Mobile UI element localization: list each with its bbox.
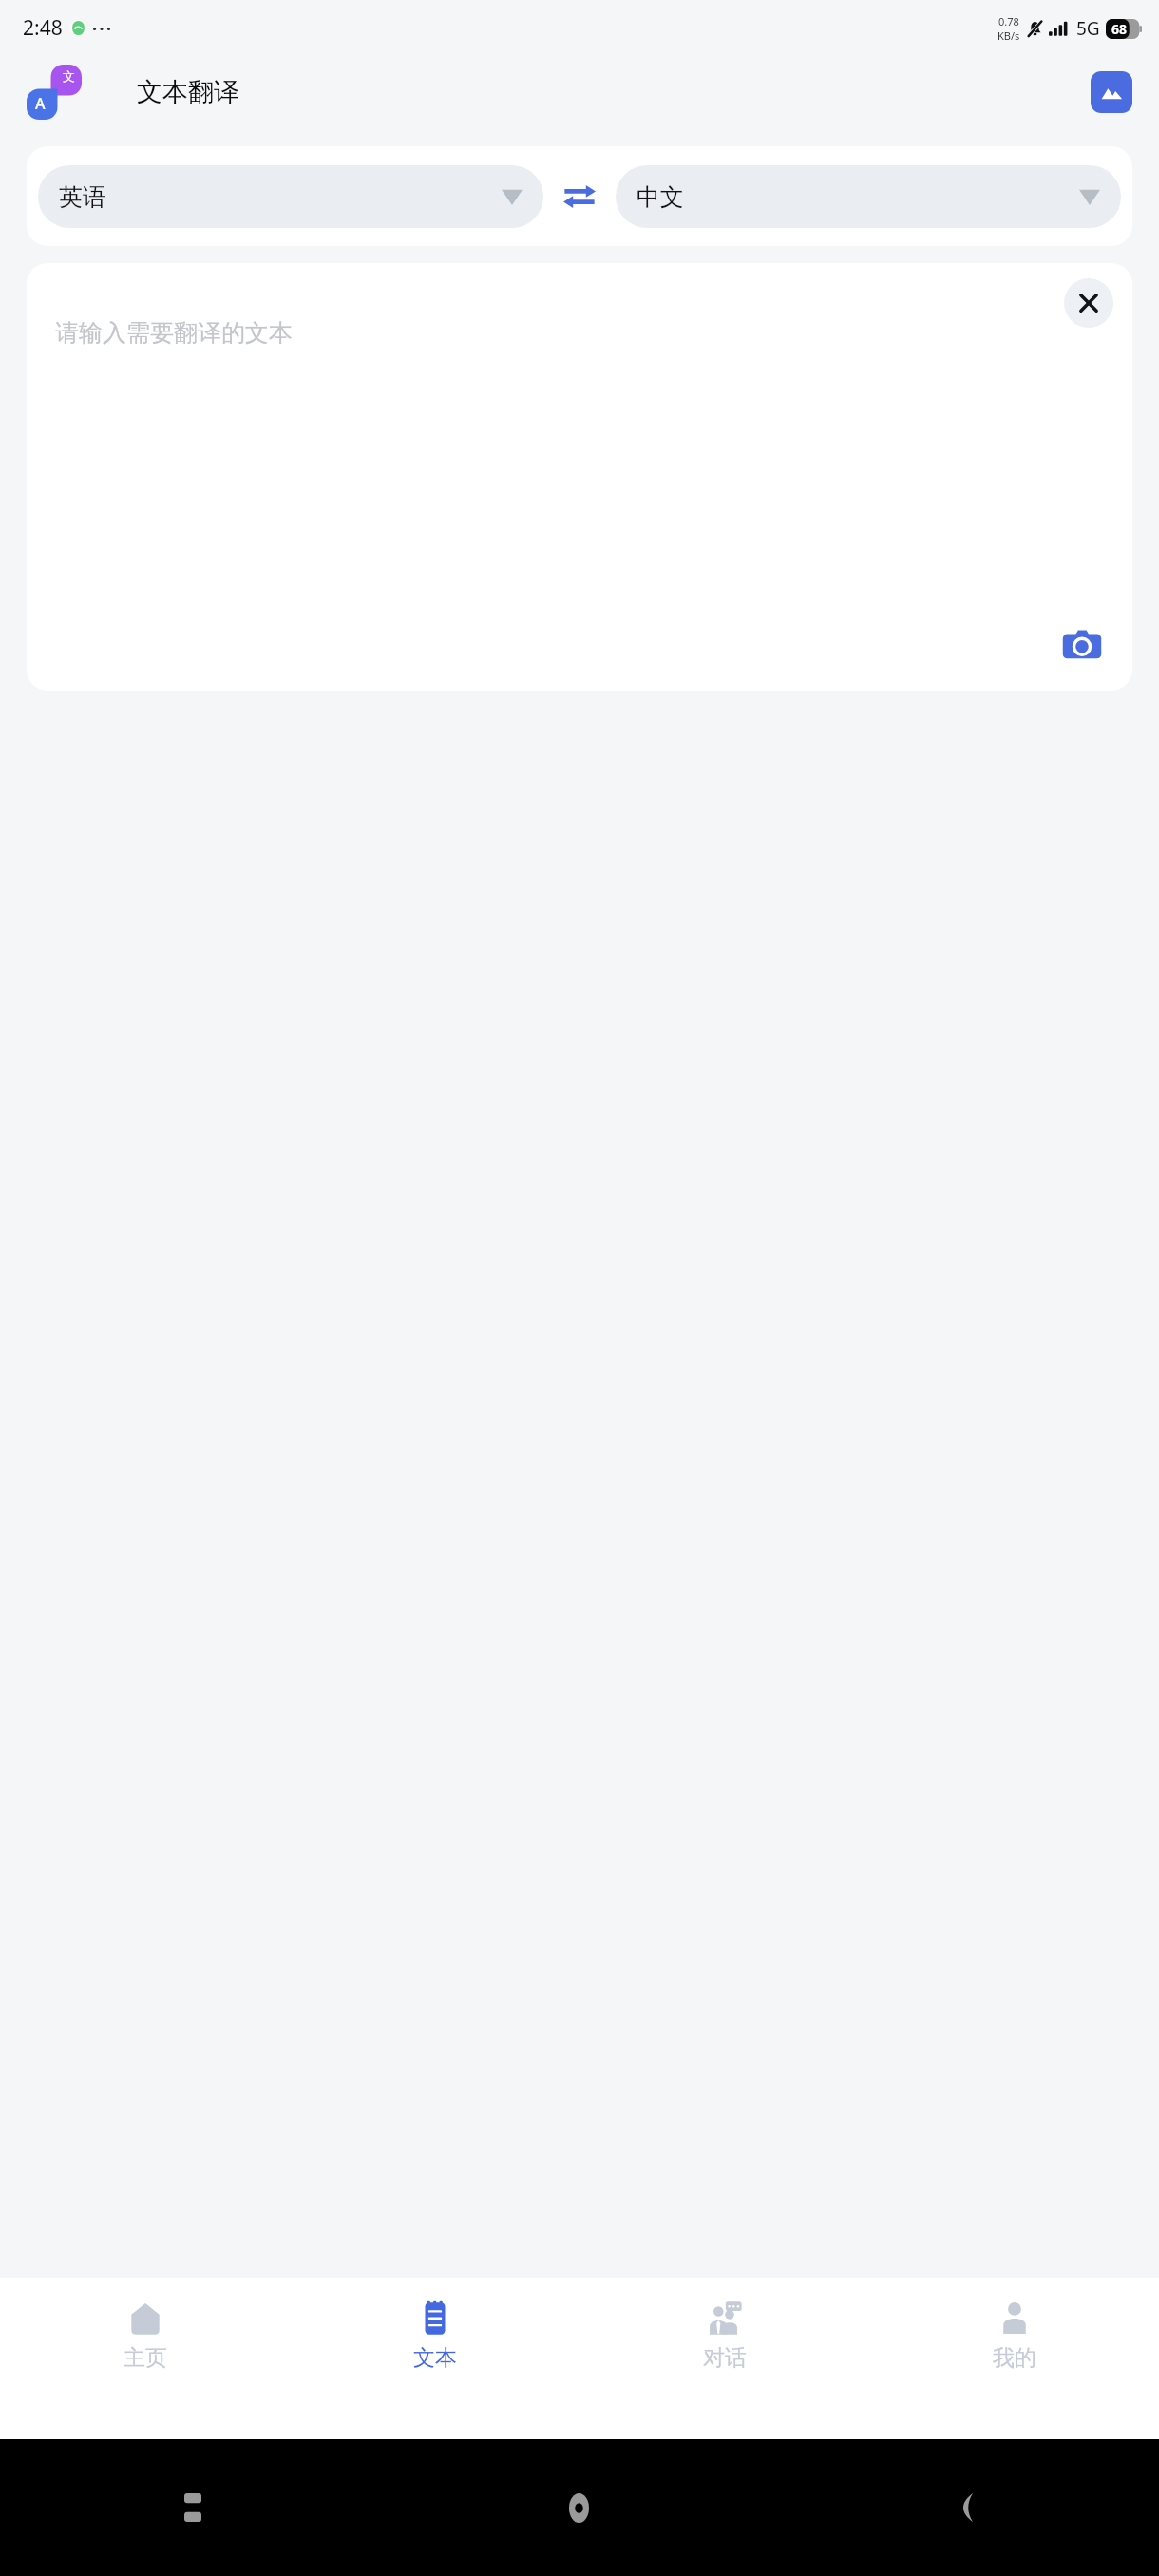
button[interactable]: Image translate bbox=[1091, 71, 1132, 113]
button[interactable]: Home bbox=[386, 2439, 772, 2576]
button[interactable]: 中文 bbox=[616, 165, 1121, 228]
button[interactable]: Camera translate bbox=[1056, 620, 1108, 672]
staticText: 文本翻译 bbox=[137, 76, 239, 108]
button[interactable]: Clear text bbox=[1064, 278, 1113, 328]
button[interactable]: 文本 bbox=[290, 2278, 579, 2439]
staticText: 5G bbox=[1076, 16, 1100, 41]
button[interactable]: Back bbox=[772, 2439, 1159, 2576]
button[interactable]: 我的 bbox=[869, 2278, 1159, 2439]
staticText: KB/s bbox=[997, 28, 1020, 43]
staticText: 请输入需要翻译的文本 bbox=[55, 318, 293, 348]
staticText: 中文 bbox=[636, 182, 684, 212]
staticText: A bbox=[35, 93, 46, 114]
staticText: 68 bbox=[1111, 20, 1128, 38]
staticText: 0.78 bbox=[998, 14, 1019, 28]
staticText: 英语 bbox=[59, 182, 106, 212]
button[interactable]: 英语 bbox=[38, 165, 543, 228]
button[interactable]: 对话 bbox=[579, 2278, 869, 2439]
button[interactable]: Recents bbox=[0, 2439, 386, 2576]
button[interactable]: 主页 bbox=[0, 2278, 290, 2439]
staticText: 2:48 bbox=[23, 14, 63, 42]
staticText: 主页 bbox=[123, 2344, 167, 2372]
staticText: 文本 bbox=[413, 2344, 457, 2372]
button[interactable]: Swap languages bbox=[543, 146, 616, 246]
staticText: 我的 bbox=[993, 2344, 1036, 2372]
staticText: 文 bbox=[63, 68, 75, 84]
staticText: 对话 bbox=[703, 2344, 747, 2372]
